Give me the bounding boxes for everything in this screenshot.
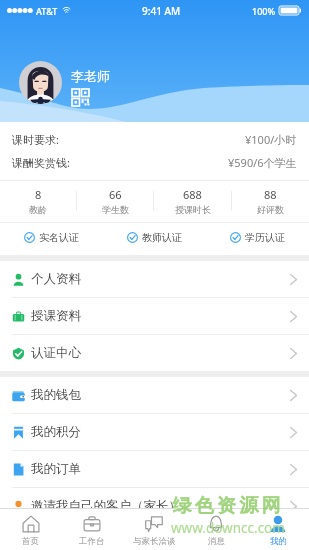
staticText: 好评数: [257, 204, 284, 215]
button[interactable]: 消息: [185, 509, 247, 550]
staticText: 个人资料: [31, 271, 81, 287]
button[interactable]: 我的钱包: [0, 377, 309, 414]
staticText: 课时要求:: [12, 132, 59, 147]
staticText: AT&T: [36, 5, 58, 17]
button[interactable]: 我的订单: [0, 451, 309, 488]
staticText: 我的订单: [31, 461, 81, 477]
staticText: 首页: [22, 536, 39, 547]
staticText: 66: [109, 187, 122, 202]
staticText: 100%: [252, 5, 276, 17]
button[interactable]: 实名认证: [0, 223, 103, 252]
staticText: ¥590/6个学生: [228, 155, 297, 170]
staticText: ¥100/小时: [245, 132, 297, 147]
button[interactable]: 工作台: [61, 509, 123, 550]
staticText: 8: [35, 187, 42, 202]
button[interactable]: 我的积分: [0, 414, 309, 451]
staticText: 授课资料: [31, 308, 81, 324]
staticText: 与家长洽谈: [133, 536, 176, 547]
button[interactable]: 我的: [247, 509, 309, 550]
button[interactable]: 教师认证: [103, 223, 206, 252]
button[interactable]: 邀请我自己的客户（家长）: [0, 488, 309, 524]
staticText: 我的积分: [31, 424, 81, 440]
staticText: 88: [264, 187, 277, 202]
staticText: 邀请我自己的客户（家长）: [31, 498, 181, 514]
button[interactable]: 学历认证: [206, 223, 309, 252]
staticText: 授课时长: [175, 204, 211, 215]
staticText: 实名认证: [39, 231, 79, 244]
button[interactable]: 首页: [0, 509, 61, 550]
button[interactable]: 认证中心: [0, 335, 309, 371]
staticText: 688: [183, 187, 202, 202]
staticText: 绿色资源网: [171, 494, 282, 518]
staticText: 教师认证: [142, 231, 182, 244]
staticText: 李老师: [71, 68, 110, 84]
staticText: 课酬奖赏钱:: [12, 155, 70, 170]
staticText: 我的钱包: [31, 387, 81, 403]
staticText: 我的: [270, 536, 287, 547]
staticText: 学生数: [102, 204, 129, 215]
staticText: 工作台: [79, 536, 105, 547]
staticText: 教龄: [29, 204, 47, 215]
staticText: 9:41 AM: [142, 4, 181, 18]
button[interactable]: 与家长洽谈: [123, 509, 185, 550]
button[interactable]: 授课资料: [0, 298, 309, 335]
button[interactable]: QR code: [72, 89, 89, 106]
staticText: 消息: [208, 536, 225, 547]
button[interactable]: 个人资料: [0, 261, 309, 298]
staticText: 认证中心: [31, 345, 81, 361]
staticText: www.downcc.com: [171, 519, 285, 537]
staticText: 学历认证: [245, 231, 285, 244]
